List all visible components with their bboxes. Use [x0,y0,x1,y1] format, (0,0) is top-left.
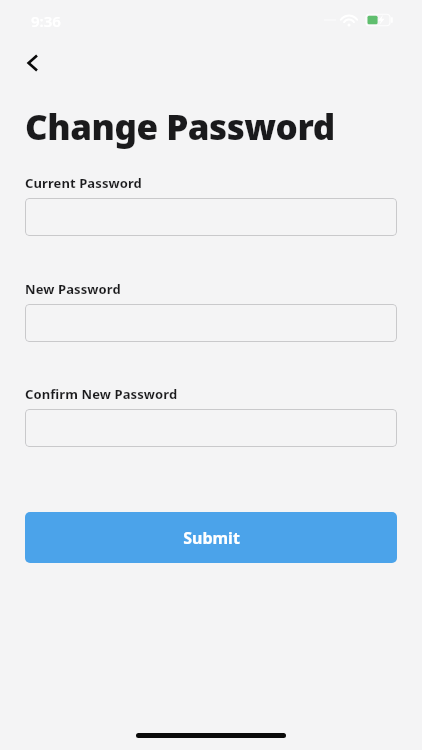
staticText: 9:36 [31,11,61,31]
button[interactable]: Back [14,44,52,82]
staticText: Confirm New Password [25,385,178,403]
staticText: Change Password [25,103,335,151]
button[interactable]: Current Password [25,198,397,236]
button[interactable]: Confirm New Password [25,409,397,447]
staticText: Current Password [25,174,142,192]
button[interactable]: New Password [25,304,397,342]
staticText: New Password [25,280,121,298]
button[interactable]: Submit [25,512,397,563]
staticText: Submit [183,527,240,549]
